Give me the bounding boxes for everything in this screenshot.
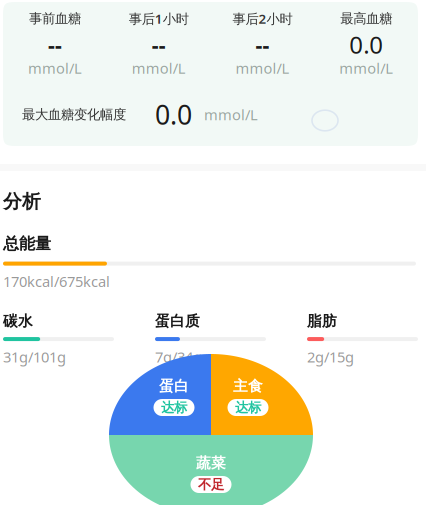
staticText: 2g/15g — [307, 347, 354, 367]
staticText: -- — [255, 30, 269, 59]
staticText: 蛋白 — [159, 377, 189, 395]
staticText: 达标 — [161, 399, 187, 416]
staticText: 0.0 — [349, 29, 383, 60]
staticText: 总能量 — [3, 234, 51, 254]
staticText: 最大血糖变化幅度 — [22, 106, 126, 123]
staticText: mmol/L — [339, 58, 393, 78]
staticText: -- — [152, 30, 166, 59]
staticText: mmol/L — [235, 58, 289, 78]
staticText: 脂肪 — [307, 312, 337, 330]
staticText: 不足 — [198, 476, 224, 493]
staticText: 达标 — [235, 399, 261, 416]
staticText: 7g/34g — [155, 347, 202, 367]
staticText: mmol/L — [132, 58, 186, 78]
staticText: 蔬菜 — [196, 454, 226, 472]
staticText: 170kcal/675kcal — [3, 272, 110, 291]
staticText: 蛋白质 — [155, 312, 200, 330]
staticText: 31g/101g — [3, 347, 66, 367]
staticText: mmol/L — [204, 105, 258, 124]
staticText: 事后1小时 — [129, 10, 189, 27]
staticText: -- — [48, 30, 62, 59]
staticText: 事前血糖 — [29, 10, 81, 27]
staticText: 分析 — [3, 190, 41, 213]
staticText: 最高血糖 — [340, 10, 392, 27]
staticText: 主食 — [233, 377, 263, 395]
staticText: 事后2小时 — [232, 10, 292, 27]
staticText: 0.0 — [155, 97, 192, 132]
staticText: 碳水 — [3, 312, 33, 330]
staticText: mmol/L — [28, 58, 82, 78]
